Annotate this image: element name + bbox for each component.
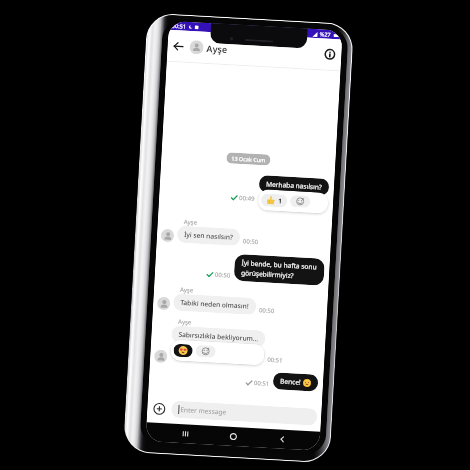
- staticText: 00:51: [171, 22, 187, 31]
- staticText: 00:50: [243, 237, 259, 246]
- staticText: 00:50: [259, 306, 275, 315]
- staticText: 00:50: [215, 271, 231, 280]
- staticText: İyi sen nasılsın?: [184, 230, 233, 242]
- button[interactable]: Reaction: [173, 344, 193, 358]
- staticText: Ayşe: [206, 42, 228, 55]
- button[interactable]: Back: [170, 38, 187, 55]
- staticText: 00:51: [254, 379, 270, 388]
- button[interactable]: Add reaction: [290, 195, 310, 208]
- staticText: Ayşe: [180, 286, 194, 295]
- staticText: Ayşe: [184, 218, 198, 227]
- staticText: İyi bende, bu hafta sonu görüşebilirmiyi…: [241, 258, 318, 281]
- staticText: Tabiki neden olmasın!: [180, 298, 249, 311]
- staticText: Ayşe: [178, 318, 192, 327]
- staticText: Sabırsızlıkla bekliyorum...: [178, 330, 259, 343]
- button[interactable]: Add attachment: [151, 400, 168, 417]
- staticText: 00:51: [267, 356, 283, 365]
- button[interactable]: Recent apps: [174, 424, 195, 444]
- button[interactable]: Conversation info: [322, 46, 338, 62]
- button[interactable]: Enter message: [171, 400, 318, 426]
- staticText: 00:49: [239, 194, 255, 203]
- button[interactable]: Add reaction: [195, 345, 216, 358]
- staticText: 13 Ocak Cum: [231, 154, 266, 163]
- staticText: Enter message: [180, 405, 226, 417]
- staticText: 1: [278, 196, 282, 205]
- staticText: Bence!: [280, 377, 301, 387]
- staticText: %27: [319, 30, 332, 39]
- button[interactable]: Reaction: [261, 193, 287, 208]
- button[interactable]: Home: [222, 426, 243, 447]
- staticText: Merhaba nasılsın?: [266, 179, 322, 192]
- button[interactable]: Back: [271, 429, 292, 449]
